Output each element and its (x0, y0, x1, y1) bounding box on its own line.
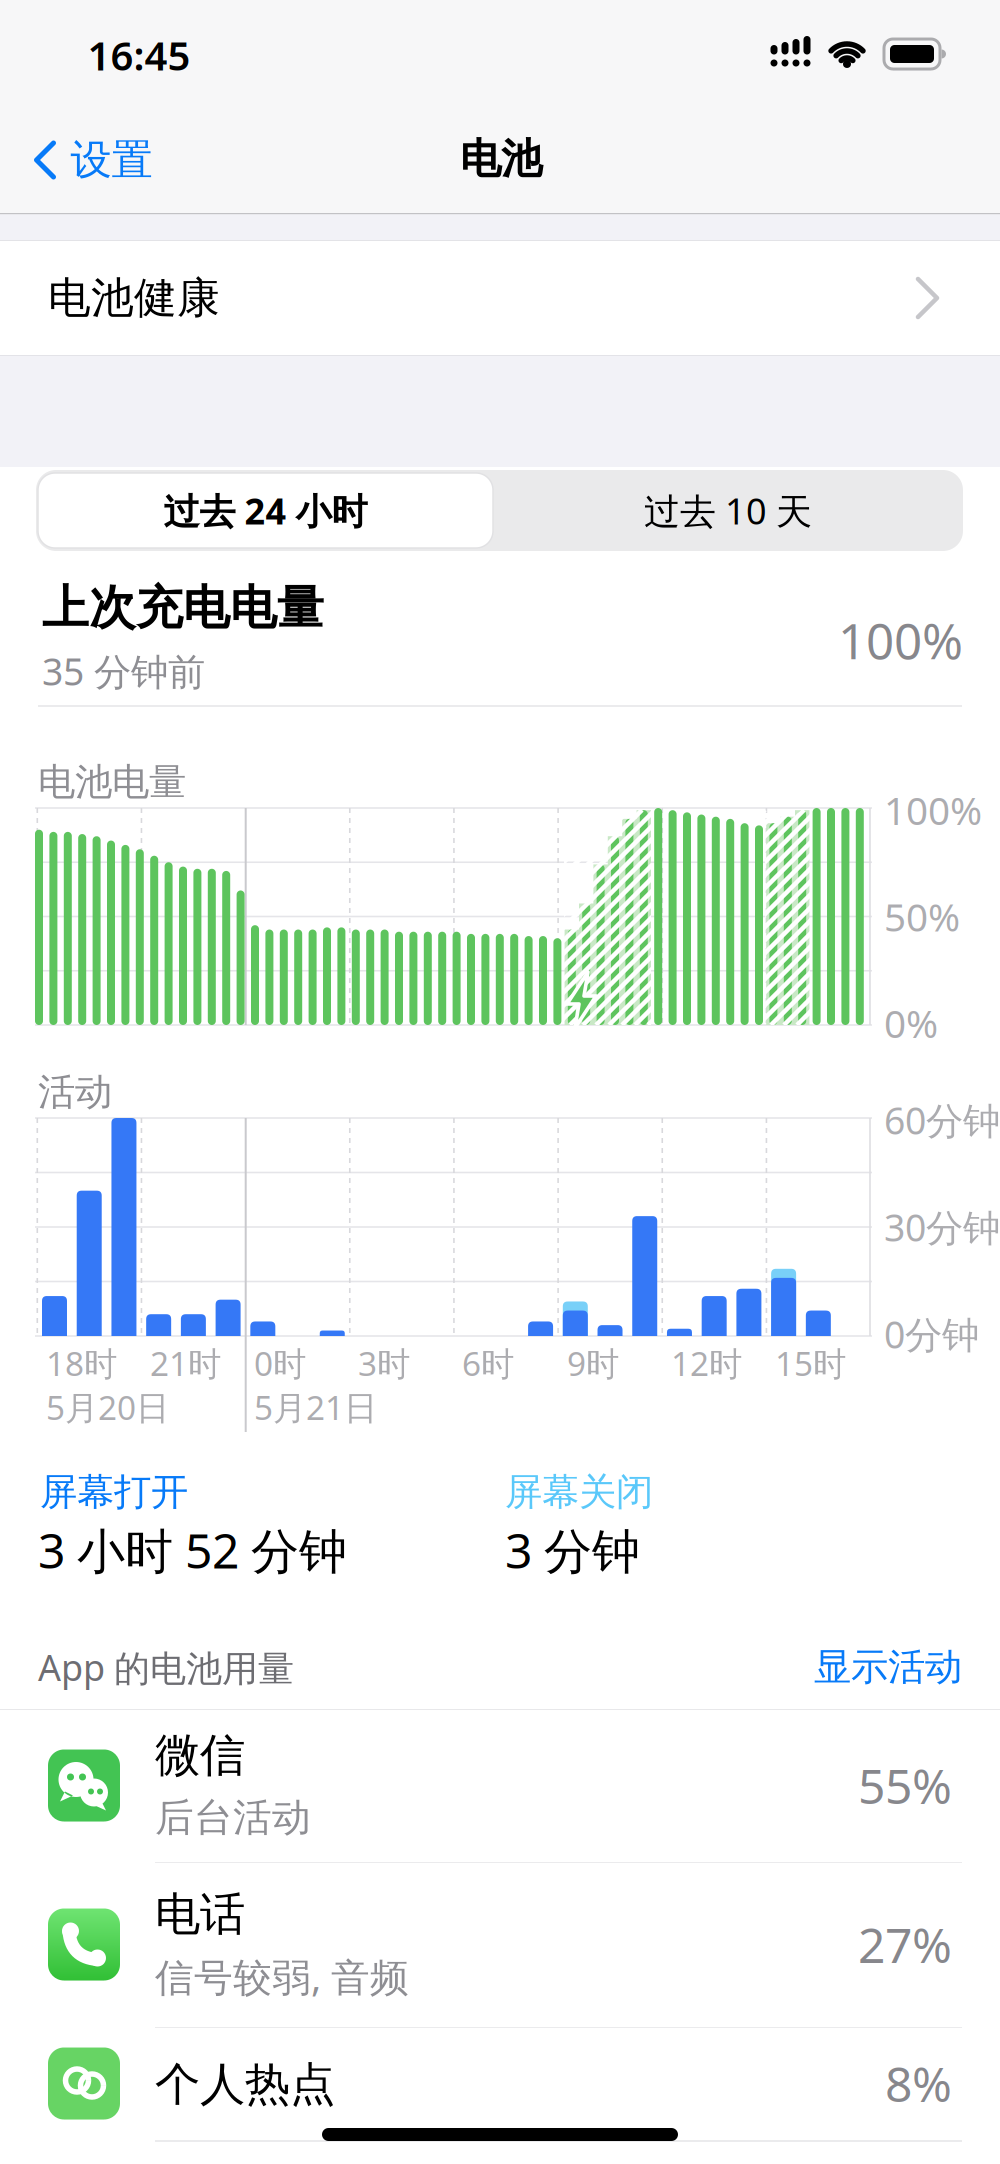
staticText: 50% (884, 891, 960, 942)
staticText: 过去 10 天 (644, 487, 812, 534)
staticText: 15时 (775, 1341, 846, 1385)
staticText: 电池 (460, 134, 542, 184)
staticText: 35 分钟前 (42, 646, 205, 696)
staticText: 0% (884, 997, 938, 1049)
staticText: 12时 (671, 1341, 742, 1385)
staticText: 电池电量 (38, 759, 186, 805)
button[interactable]: 电池健康 (0, 241, 1000, 355)
staticText: 21时 (150, 1341, 221, 1385)
staticText: 30分钟 (884, 1202, 1000, 1252)
staticText: 活动 (38, 1069, 112, 1115)
button[interactable]: 设置 (33, 135, 152, 185)
staticText: 27% (858, 1913, 952, 1976)
button[interactable]: 个人热点 (0, 2028, 1000, 2141)
staticText: 60分钟 (884, 1095, 1000, 1145)
staticText: 个人热点 (155, 2057, 335, 2112)
staticText: 5月20日 (46, 1385, 169, 1429)
staticText: 100% (884, 784, 982, 836)
staticText: 8% (885, 2052, 952, 2115)
staticText: 电话 (155, 1887, 245, 1942)
staticText: 16:45 (87, 28, 190, 81)
staticText: 3 分钟 (505, 1518, 640, 1582)
staticText: 信号较弱, 音频 (155, 1951, 409, 2002)
staticText: 设置 (70, 135, 152, 185)
staticText: 100% (838, 607, 963, 673)
staticText: 5月21日 (254, 1385, 377, 1429)
button[interactable]: 微信 (0, 1710, 1000, 1863)
staticText: 后台活动 (155, 1794, 311, 1841)
staticText: 9时 (567, 1341, 619, 1385)
staticText: 3时 (358, 1341, 410, 1385)
staticText: 0分钟 (884, 1309, 979, 1359)
staticText: 上次充电电量 (42, 579, 324, 637)
staticText: 0时 (254, 1341, 306, 1385)
staticText: 3 小时 52 分钟 (38, 1518, 347, 1582)
staticText: 18时 (46, 1341, 117, 1385)
staticText: 电池健康 (48, 272, 220, 324)
staticText: 微信 (155, 1728, 245, 1783)
button[interactable]: 过去 24 小时 (38, 473, 493, 548)
button[interactable]: 电话 (0, 1863, 1000, 2028)
staticText: 屏幕关闭 (505, 1469, 653, 1515)
staticText: 55% (858, 1754, 952, 1817)
staticText: 过去 24 小时 (163, 487, 367, 534)
staticText: 显示活动 (814, 1644, 962, 1690)
staticText: 6时 (462, 1341, 514, 1385)
button[interactable]: 过去 10 天 (498, 473, 958, 548)
staticText: 屏幕打开 (40, 1469, 188, 1515)
button[interactable]: 显示活动 (742, 1644, 962, 1690)
staticText: App 的电池用量 (38, 1643, 294, 1691)
